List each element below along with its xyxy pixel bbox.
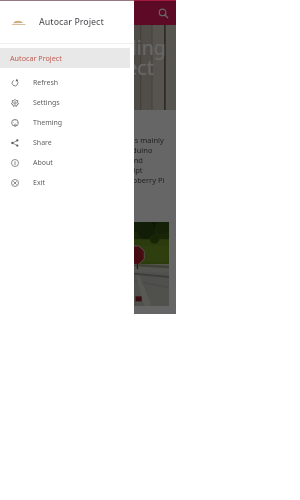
staticText: Auto Building Project	[90, 14, 166, 81]
staticText: based on Arduino	[90, 145, 153, 155]
button[interactable]: Autocar Project	[0, 48, 130, 68]
staticText: Share	[33, 138, 52, 148]
button[interactable]: Share	[0, 133, 134, 153]
staticText: Refresh	[33, 78, 59, 88]
staticText: This project is mainly	[90, 135, 164, 145]
staticText: code on Raspberry Pi	[90, 175, 165, 185]
button[interactable]: Settings	[0, 93, 134, 113]
staticText: Uno board and	[90, 155, 143, 165]
staticText: Exit	[33, 178, 45, 188]
staticText: Autocar Project	[39, 16, 104, 28]
staticText: Theming	[33, 118, 63, 128]
staticText: a python script	[90, 165, 143, 175]
button[interactable]: Refresh	[0, 73, 134, 93]
staticText: Autocar Project	[10, 53, 62, 63]
button[interactable]: Exit	[0, 173, 134, 193]
staticText: Settings	[33, 98, 60, 108]
staticText: About	[33, 158, 53, 168]
button[interactable]: Theming	[0, 113, 134, 133]
button[interactable]: About	[0, 153, 134, 173]
button[interactable]: Search	[155, 5, 171, 21]
